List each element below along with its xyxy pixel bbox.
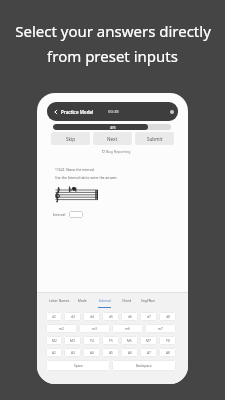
- staticText: Backspace: [136, 364, 152, 368]
- button[interactable]: A8: [159, 348, 176, 357]
- staticText: m3: [92, 327, 97, 331]
- staticText: Skip: [66, 136, 75, 142]
- staticText: Chord: [122, 299, 132, 303]
- button[interactable]: A3: [64, 348, 81, 357]
- button[interactable]: A6: [121, 348, 138, 357]
- staticText: A4: [90, 351, 94, 355]
- staticText: Practice Model: [61, 109, 94, 115]
- button[interactable]: Chord: [115, 293, 137, 308]
- staticText: from preset inputs: [47, 46, 178, 66]
- staticText: Interval: [53, 212, 66, 217]
- button[interactable]: Mode: [71, 293, 93, 308]
- button[interactable]: P5: [102, 336, 119, 345]
- staticText: d2: [52, 315, 56, 319]
- staticText: A3: [71, 351, 75, 355]
- staticText: M7: [146, 339, 151, 343]
- button[interactable]: P8: [159, 336, 176, 345]
- staticText: A6: [128, 351, 132, 355]
- staticText: Submit: [147, 136, 163, 142]
- button[interactable]: m3: [79, 324, 110, 333]
- button[interactable]: Letter Names: [48, 293, 71, 308]
- button[interactable]: A7: [140, 348, 157, 357]
- staticText: Sngl/Non: [141, 299, 156, 303]
- button[interactable]: [69, 211, 83, 218]
- button[interactable]: M6: [121, 336, 138, 345]
- button[interactable]: Submit: [135, 132, 174, 145]
- staticText: d7: [147, 315, 151, 319]
- button[interactable]: Skip: [51, 132, 90, 145]
- staticText: m6: [125, 327, 130, 331]
- staticText: Select your answers directly: [15, 21, 211, 41]
- staticText: d8: [166, 315, 170, 319]
- button[interactable]: M7: [140, 336, 157, 345]
- staticText: 4/5: [110, 125, 116, 130]
- button[interactable]: Interval: [93, 293, 115, 308]
- button[interactable]: d7: [140, 312, 157, 321]
- button[interactable]: A5: [102, 348, 119, 357]
- button[interactable]: m2: [46, 324, 77, 333]
- staticText: d4: [90, 315, 94, 319]
- staticText: m7: [158, 327, 163, 331]
- staticText: P5: [109, 339, 113, 343]
- staticText: A5: [109, 351, 113, 355]
- button[interactable]: d6: [121, 312, 138, 321]
- staticText: A2: [52, 351, 56, 355]
- staticText: Next: [107, 136, 118, 142]
- staticText: A7: [147, 351, 151, 355]
- button[interactable]: M2: [46, 336, 62, 345]
- staticText: A8: [166, 351, 170, 355]
- button[interactable]: d3: [64, 312, 81, 321]
- button[interactable]: M3: [64, 336, 81, 345]
- button[interactable]: Space: [46, 360, 110, 371]
- button[interactable]: d4: [83, 312, 100, 321]
- staticText: 00:38: [108, 109, 119, 115]
- staticText: Use the Interval tab to enter the answer…: [55, 175, 118, 179]
- staticText: Space: [74, 364, 83, 368]
- button[interactable]: d8: [159, 312, 176, 321]
- staticText: Bug Reporting: [106, 149, 131, 154]
- button[interactable]: Backspace: [112, 360, 176, 371]
- button[interactable]: m6: [112, 324, 143, 333]
- staticText: M2: [52, 339, 57, 343]
- button[interactable]: Profile: [170, 110, 174, 114]
- staticText: Interval: [99, 299, 111, 303]
- staticText: P8: [166, 339, 170, 343]
- button[interactable]: P4: [83, 336, 100, 345]
- button[interactable]: Bug Reporting: [102, 149, 131, 154]
- button[interactable]: Back: [53, 109, 59, 115]
- button[interactable]: m7: [145, 324, 176, 333]
- button[interactable]: A2: [46, 348, 62, 357]
- staticText: d3: [71, 315, 75, 319]
- button[interactable]: d5: [102, 312, 119, 321]
- staticText: d5: [109, 315, 113, 319]
- staticText: Mode: [78, 299, 87, 303]
- button[interactable]: A4: [83, 348, 100, 357]
- button[interactable]: Next: [93, 132, 132, 145]
- staticText: m2: [59, 327, 64, 331]
- staticText: Letter Names: [49, 299, 70, 303]
- button[interactable]: Sngl/Non: [137, 293, 159, 308]
- button[interactable]: d2: [46, 312, 62, 321]
- staticText: d6: [128, 315, 132, 319]
- staticText: P4: [90, 339, 94, 343]
- staticText: M3: [70, 339, 75, 343]
- staticText: 11622. Name the interval.: [55, 167, 95, 171]
- staticText: M6: [127, 339, 132, 343]
